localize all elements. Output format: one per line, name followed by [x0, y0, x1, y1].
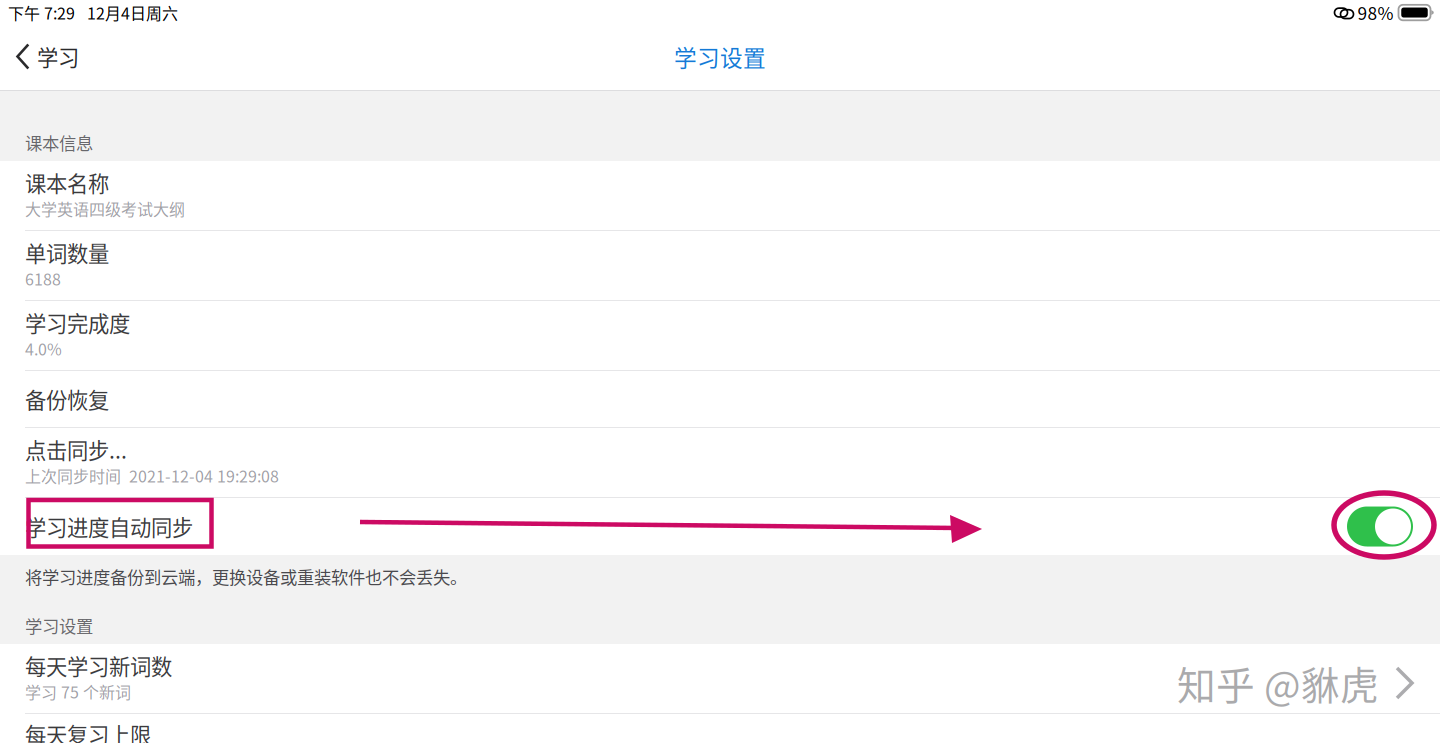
button[interactable]: 每天学习新词数	[0, 644, 1440, 713]
staticText: 98%	[1357, 0, 1393, 25]
staticText: 学习设置	[674, 40, 766, 73]
staticText: 将学习进度备份到云端，更换设备或重装软件也不会丢失。	[25, 564, 467, 589]
button[interactable]: 返回 学习	[0, 31, 93, 82]
staticText: 备份恢复	[25, 384, 109, 414]
staticText: 大学英语四级考试大纲	[25, 197, 185, 220]
staticText: 4.0%	[25, 337, 62, 360]
button[interactable]: 备份恢复	[0, 371, 1440, 427]
staticText: 下午 7:29 12月4日周六	[8, 1, 178, 24]
staticText: 学习设置	[25, 613, 93, 638]
staticText: 单词数量	[25, 237, 109, 268]
button[interactable]: 课本名称	[0, 161, 1440, 230]
button[interactable]: 每天复习上限	[0, 714, 1440, 743]
staticText: 每天复习上限	[25, 719, 151, 743]
staticText: 6188	[25, 267, 61, 290]
button[interactable]: 点击同步...	[0, 428, 1440, 497]
staticText: 学习	[37, 41, 79, 72]
staticText: 每天学习新词数	[25, 650, 172, 681]
staticText: 点击同步...	[25, 434, 127, 465]
button[interactable]: 单词数量	[0, 231, 1440, 300]
button[interactable]: 学习进度自动同步	[0, 498, 1440, 555]
staticText: 知乎 @貅虎	[1177, 655, 1379, 711]
button[interactable]: 学习完成度	[0, 301, 1440, 370]
staticText: 学习 75 个新词	[25, 680, 131, 703]
staticText: 课本信息	[25, 130, 93, 155]
staticText: 学习进度自动同步	[25, 511, 193, 542]
staticText: 课本名称	[25, 167, 109, 198]
button[interactable]: 学习进度自动同步, 开	[1347, 506, 1413, 546]
staticText: 学习完成度	[25, 307, 130, 338]
staticText: 上次同步时间 2021-12-04 19:29:08	[25, 464, 279, 487]
